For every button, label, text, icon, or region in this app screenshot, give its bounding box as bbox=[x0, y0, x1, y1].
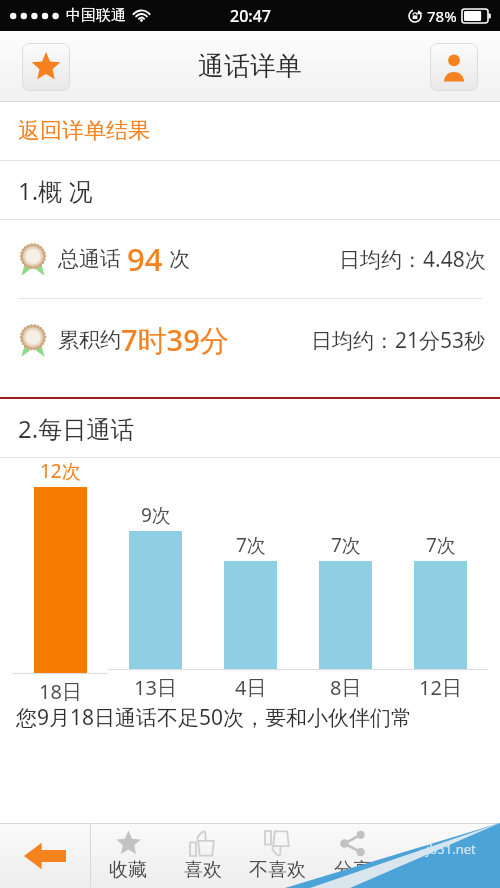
button[interactable]: 累积约 bbox=[0, 299, 500, 381]
staticText: 不喜欢 bbox=[249, 858, 306, 882]
staticText: 日均约：21分53秒 bbox=[311, 326, 486, 355]
staticText: 8日 bbox=[330, 674, 362, 701]
staticText: 4日 bbox=[235, 674, 267, 701]
button[interactable]: 返回详单结果 bbox=[0, 102, 500, 160]
staticText: 12日 bbox=[419, 674, 462, 701]
staticText: 94 bbox=[127, 238, 163, 280]
button[interactable]: Account bbox=[430, 43, 478, 91]
staticText: 日均约：4.48次 bbox=[339, 245, 486, 274]
staticText: 2.每日通话 bbox=[18, 412, 135, 445]
button[interactable]: Back bbox=[0, 823, 90, 888]
button[interactable]: 不喜欢 bbox=[240, 823, 315, 888]
staticText: 9次 bbox=[141, 502, 171, 528]
staticText: 总通话 bbox=[58, 246, 121, 272]
staticText: 12次 bbox=[40, 458, 81, 484]
staticText: 通话详单 bbox=[198, 50, 302, 83]
staticText: 7次 bbox=[236, 532, 266, 558]
staticText: 喜欢 bbox=[184, 858, 222, 882]
staticText: 18日 bbox=[39, 678, 82, 701]
staticText: 累积约 bbox=[58, 327, 121, 353]
staticText: 您9月18日通话不足50次，要和小伙伴们常 bbox=[16, 703, 413, 732]
staticText: 1.概 况 bbox=[18, 174, 93, 207]
button[interactable]: 总通话 bbox=[0, 220, 500, 298]
staticText: 78% bbox=[427, 6, 457, 26]
button[interactable]: Favorites bbox=[22, 43, 70, 91]
staticText: 13日 bbox=[134, 674, 177, 701]
staticText: jb51.net bbox=[426, 840, 476, 858]
staticText: 收藏 bbox=[109, 858, 147, 882]
staticText: 中国联通 bbox=[66, 6, 126, 25]
staticText: 次 bbox=[169, 246, 190, 272]
button[interactable]: 喜欢 bbox=[165, 823, 240, 888]
staticText: 7次 bbox=[331, 532, 361, 558]
staticText: 分享 bbox=[334, 858, 372, 882]
staticText: 20:47 bbox=[230, 5, 271, 27]
staticText: 7次 bbox=[426, 532, 456, 558]
staticText: 返回详单结果 bbox=[18, 117, 150, 145]
staticText: 7时39分 bbox=[121, 320, 229, 360]
button[interactable]: 分享 bbox=[315, 823, 390, 888]
button[interactable]: 收藏 bbox=[91, 823, 165, 888]
